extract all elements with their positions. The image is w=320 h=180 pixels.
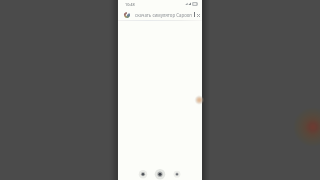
button[interactable]: скачать симулятор Сарооn bbox=[118, 9, 202, 20]
button[interactable]: Recent apps bbox=[171, 168, 183, 180]
button[interactable]: Back bbox=[137, 168, 149, 180]
button[interactable]: Home bbox=[154, 168, 166, 180]
staticText: 10:48 bbox=[125, 2, 135, 7]
staticText: скачать симулятор Сарооn bbox=[135, 12, 193, 18]
button[interactable]: Clear query bbox=[196, 11, 200, 19]
